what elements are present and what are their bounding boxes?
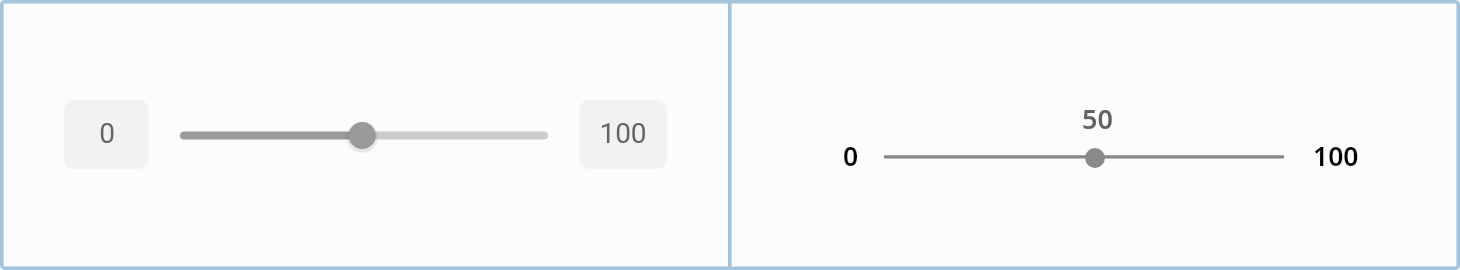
staticText: 0 bbox=[99, 117, 115, 150]
button[interactable]: 0 bbox=[843, 138, 859, 174]
button[interactable]: Slider, value 50 of 100 bbox=[166, 112, 562, 159]
staticText: 50 bbox=[1082, 100, 1113, 137]
staticText: 100 bbox=[599, 117, 647, 150]
button[interactable]: 100 bbox=[579, 100, 667, 169]
button[interactable]: 0 bbox=[64, 100, 149, 169]
button[interactable]: Slider, value 50 of 100 bbox=[879, 138, 1289, 178]
staticText: 0 bbox=[843, 138, 859, 174]
button[interactable]: 100 bbox=[1313, 138, 1359, 174]
staticText: 100 bbox=[1313, 138, 1359, 174]
